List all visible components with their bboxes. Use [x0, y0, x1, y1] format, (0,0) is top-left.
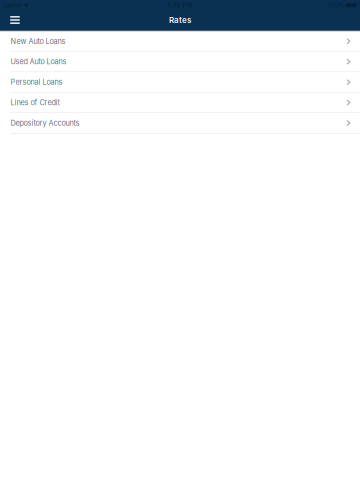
- button[interactable]: Used Auto Loans: [0, 52, 360, 72]
- staticText: 5:16 PM: [167, 2, 192, 9]
- staticText: Carrier: [3, 2, 22, 9]
- staticText: Depository Accounts: [10, 119, 79, 127]
- staticText: Used Auto Loans: [10, 57, 66, 66]
- button[interactable]: Personal Loans: [0, 72, 360, 93]
- button[interactable]: Lines of Credit: [0, 93, 360, 113]
- button[interactable]: New Auto Loans: [0, 31, 360, 52]
- button[interactable]: Menu: [5, 10, 25, 30]
- button[interactable]: Depository Accounts: [0, 113, 360, 134]
- staticText: 100%: [328, 2, 345, 9]
- staticText: Personal Loans: [10, 78, 62, 87]
- staticText: Rates: [169, 15, 191, 25]
- staticText: New Auto Loans: [10, 37, 65, 46]
- staticText: Lines of Credit: [10, 98, 59, 107]
